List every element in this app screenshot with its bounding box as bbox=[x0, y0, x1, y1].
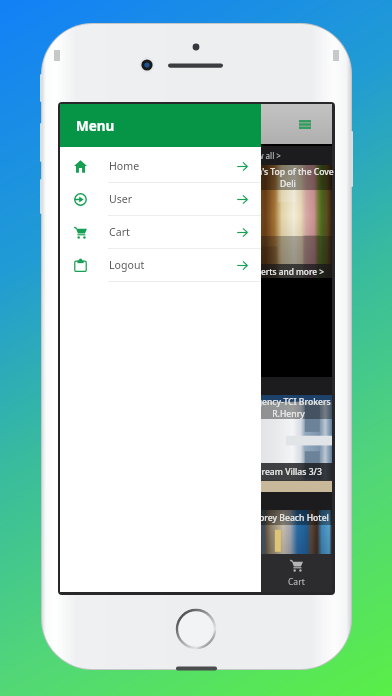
staticText: User bbox=[109, 192, 133, 206]
staticText: Cart bbox=[288, 576, 305, 588]
button[interactable]: Menu bbox=[60, 104, 261, 147]
staticText: Menu bbox=[76, 117, 115, 135]
button[interactable]: Open navigation menu bbox=[291, 110, 319, 138]
button[interactable]: Logout bbox=[60, 249, 261, 282]
button[interactable] bbox=[60, 165, 332, 278]
staticText: Logout bbox=[109, 258, 145, 272]
button[interactable] bbox=[60, 395, 332, 492]
staticText: Cart bbox=[109, 225, 130, 239]
button[interactable]: User bbox=[60, 183, 261, 216]
button[interactable] bbox=[60, 510, 332, 554]
button[interactable]: Home bbox=[60, 150, 261, 183]
staticText: Regency-TCI Brokers R.Henry bbox=[246, 396, 331, 419]
staticText: Home bbox=[109, 159, 140, 173]
staticText: Mela's Top of the Cove Deli bbox=[242, 166, 334, 189]
staticText: Dream Villas 3/3 bbox=[255, 466, 322, 478]
button[interactable]: Cart bbox=[261, 554, 331, 592]
staticText: desserts and more > bbox=[243, 266, 324, 277]
staticText: Osprey Beach Hotel bbox=[248, 512, 329, 524]
button[interactable]: Cart bbox=[60, 216, 261, 249]
staticText: View all > bbox=[246, 150, 281, 161]
